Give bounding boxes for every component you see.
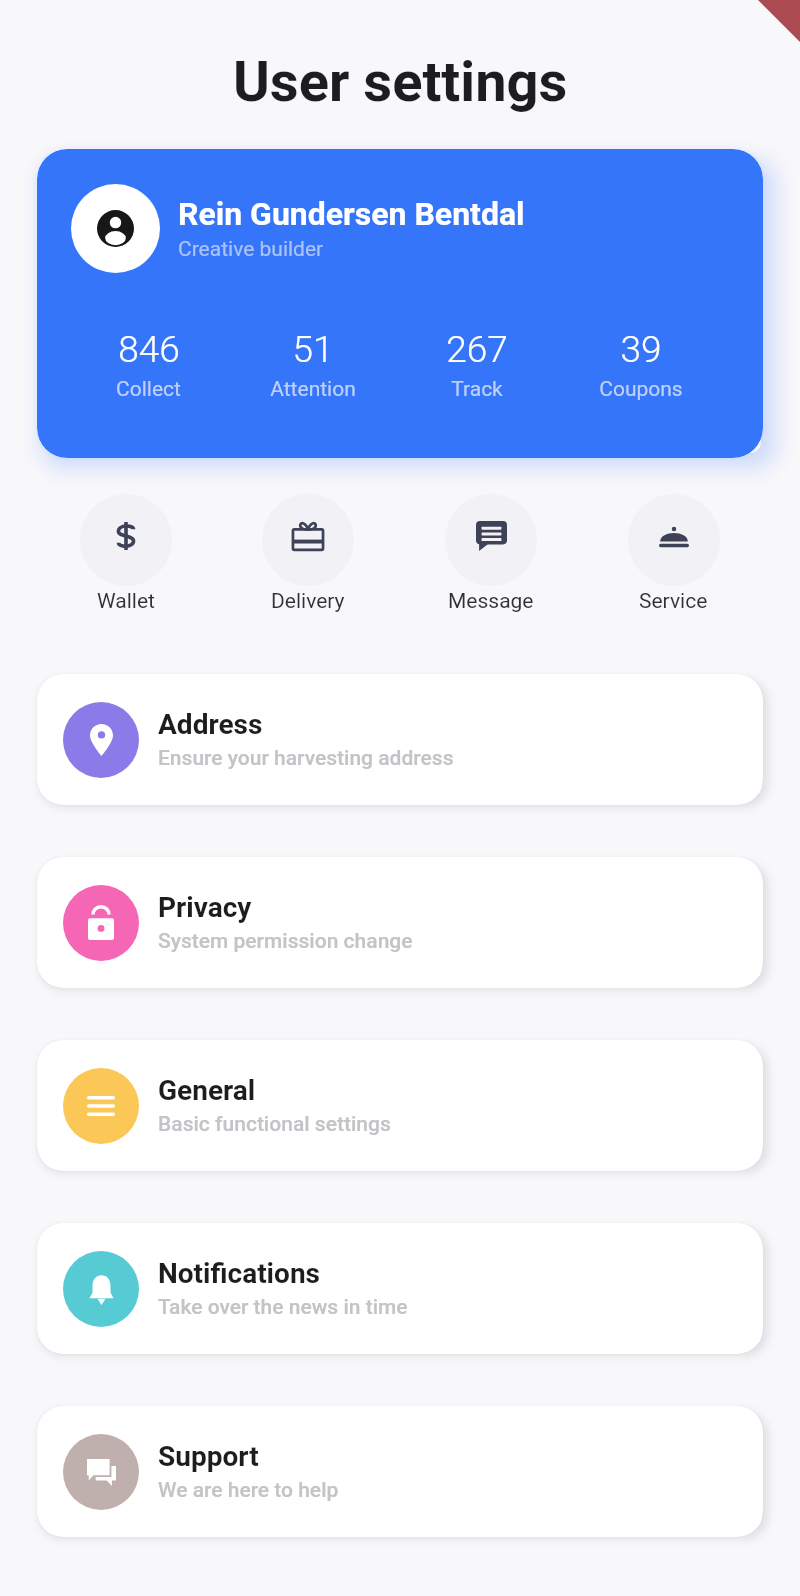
button[interactable]: Support	[37, 1406, 763, 1537]
button[interactable]: General	[37, 1040, 763, 1171]
staticText: System permission change	[158, 929, 413, 954]
staticText: General	[158, 1074, 256, 1107]
button[interactable]: Address	[37, 674, 763, 805]
staticText: 267	[446, 328, 508, 371]
staticText: 51	[292, 328, 334, 371]
button[interactable]: Notifications	[37, 1223, 763, 1354]
button[interactable]: Privacy	[37, 857, 763, 988]
button[interactable]: 51	[231, 328, 395, 402]
staticText: Track	[451, 377, 503, 402]
staticText: Rein Gundersen Bentdal	[178, 195, 525, 233]
staticText: Collect	[116, 377, 181, 402]
staticText: Attention	[270, 377, 356, 402]
staticText: Take over the news in time	[158, 1295, 408, 1320]
button[interactable]: 267	[395, 328, 559, 402]
staticText: Service	[639, 589, 708, 614]
other: Debug banner	[758, 0, 800, 42]
staticText: Privacy	[158, 891, 252, 924]
button[interactable]: Message	[399, 494, 582, 614]
staticText: User settings	[233, 49, 568, 115]
staticText: Support	[158, 1440, 259, 1473]
button[interactable]: Rein Gundersen Bentdal	[37, 149, 763, 458]
staticText: Basic functional settings	[158, 1112, 391, 1137]
staticText: 846	[118, 328, 180, 371]
button[interactable]: 846	[66, 328, 231, 402]
staticText: Delivery	[271, 589, 345, 614]
staticText: Message	[448, 589, 534, 614]
staticText: Creative builder	[178, 237, 324, 262]
staticText: Coupons	[599, 377, 683, 402]
staticText: Ensure your harvesting address	[158, 746, 454, 771]
button[interactable]: 39	[559, 328, 723, 402]
staticText: We are here to help	[158, 1478, 339, 1503]
button[interactable]: Delivery	[217, 494, 399, 614]
staticText: Notifications	[158, 1257, 320, 1290]
button[interactable]: Wallet	[35, 494, 217, 614]
button[interactable]: Service	[582, 494, 765, 614]
staticText: 39	[620, 328, 662, 371]
staticText: Wallet	[97, 589, 155, 614]
staticText: Address	[158, 708, 263, 741]
